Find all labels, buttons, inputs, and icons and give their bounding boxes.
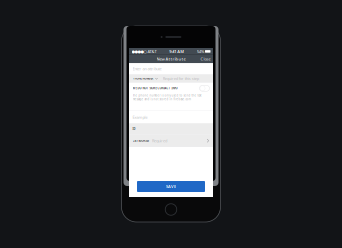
staticText: 9:41 AM — [169, 49, 184, 54]
staticText: The phone number is only used to send th… — [132, 94, 201, 101]
staticText: SAVE — [166, 184, 176, 189]
staticText: New Attribute — [156, 56, 185, 62]
staticText: CATEGORIES — [132, 139, 148, 142]
staticText: 54% — [197, 49, 204, 54]
staticText: Required — [152, 138, 167, 143]
button[interactable]: SAVE — [137, 181, 205, 192]
button[interactable]: Do not store contact info — [199, 85, 209, 91]
staticText: Enter an attribute — [132, 66, 161, 71]
button[interactable]: Close — [198, 54, 213, 63]
staticText: ID — [132, 127, 135, 131]
staticText: Close — [200, 56, 210, 62]
button[interactable]: CATEGORIES — [129, 135, 213, 147]
staticText: ●●●●○ AT&T — [131, 49, 156, 54]
staticText: PHONE NUMBER — [132, 77, 153, 80]
staticText: Example — [132, 114, 147, 120]
staticText: WE DO NOT STORE CONTACT INFO — [132, 86, 177, 90]
staticText: Required for this step — [163, 76, 199, 81]
